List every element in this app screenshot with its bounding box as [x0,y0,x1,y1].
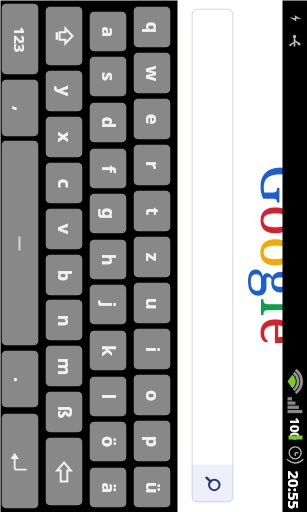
button[interactable]: d [89,102,126,142]
button[interactable]: u [133,282,170,323]
button[interactable]: Search [191,8,233,502]
button[interactable]: Shift [45,6,82,65]
staticText: w [139,65,164,81]
staticText: , [7,105,32,111]
button[interactable]: ä [89,467,126,507]
staticText: s [95,71,120,81]
button[interactable]: o [133,374,170,415]
staticText: t [139,207,164,215]
button[interactable]: b [45,254,82,295]
button[interactable]: m [45,345,82,386]
staticText: e [139,113,164,124]
staticText: y [51,85,76,96]
staticText: r [139,160,164,169]
staticText: 20:55 [283,470,303,509]
staticText: p [139,435,164,447]
button[interactable]: , [1,79,38,136]
staticText: d [95,116,120,128]
staticText: ä [95,482,120,493]
button[interactable]: k [89,330,126,370]
staticText: g [95,207,120,219]
button[interactable]: Numbers [1,3,38,74]
button[interactable]: r [133,144,170,185]
button[interactable]: t [133,190,170,231]
button[interactable]: w [133,52,170,93]
button[interactable]: Space [1,140,38,345]
staticText: ü [139,481,164,493]
staticText: x [51,131,76,142]
button[interactable]: z [133,236,170,277]
button[interactable]: p [133,420,170,461]
staticText: i [139,346,164,352]
button[interactable]: h [89,239,126,279]
button[interactable]: n [45,299,82,340]
staticText: u [139,297,164,309]
staticText: ß [51,405,76,418]
button[interactable]: ß [45,391,82,432]
button[interactable]: Search [191,464,233,502]
staticText: G [244,164,307,204]
button[interactable]: Backspace [45,437,82,505]
button[interactable]: a [89,11,126,51]
staticText: l [244,298,307,316]
staticText: 100 [285,417,303,440]
staticText: j [95,301,120,307]
staticText: b [51,269,76,281]
button[interactable]: q [133,6,170,47]
staticText: c [51,178,76,188]
staticText: f [95,165,120,172]
staticText: v [51,223,76,234]
button[interactable]: c [45,162,82,203]
staticText: o [244,204,307,236]
staticText: m [51,357,76,375]
button[interactable]: j [89,284,126,324]
button[interactable]: l [89,376,126,416]
staticText: l [95,393,120,399]
staticText: 123 [9,26,29,52]
button[interactable]: x [45,116,82,157]
staticText: o [139,389,164,401]
button[interactable]: f [89,148,126,188]
staticText: o [244,236,307,268]
button[interactable]: g [89,193,126,233]
staticText: h [95,253,120,265]
staticText: q [139,21,164,33]
staticText: n [51,314,76,326]
button[interactable]: i [133,328,170,369]
staticText: g [244,268,307,298]
staticText: . [7,376,32,382]
button[interactable]: v [45,208,82,249]
staticText: a [95,26,120,37]
button[interactable]: . [1,350,38,407]
staticText: k [95,344,120,356]
staticText: ö [95,435,120,447]
button[interactable]: y [45,70,82,111]
button[interactable]: ü [133,466,170,507]
button[interactable]: e [133,98,170,139]
button[interactable]: Enter [1,413,38,508]
staticText: z [139,252,164,261]
button[interactable]: s [89,56,126,96]
button[interactable]: ö [89,421,126,461]
staticText: e [244,316,307,346]
